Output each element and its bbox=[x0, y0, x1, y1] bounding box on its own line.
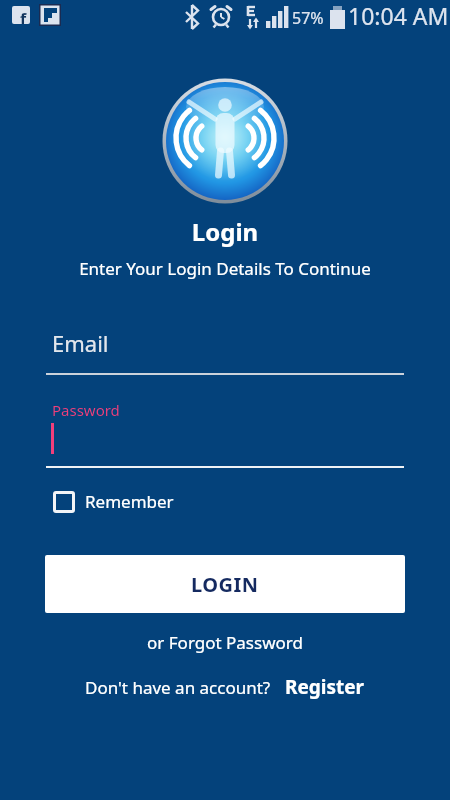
staticText: Password bbox=[52, 400, 120, 420]
staticText: 10:04 AM bbox=[348, 0, 449, 31]
staticText: f bbox=[20, 8, 27, 24]
button[interactable]: Email bbox=[46, 325, 404, 375]
staticText: Don't have an account? bbox=[85, 676, 271, 699]
staticText: Remember bbox=[85, 490, 174, 513]
button[interactable]: LOGIN bbox=[45, 555, 405, 613]
staticText: Email bbox=[52, 328, 109, 358]
staticText: Login bbox=[0, 215, 450, 248]
staticText: LOGIN bbox=[191, 571, 259, 598]
button[interactable]: Remember bbox=[53, 490, 174, 513]
button[interactable]: or Forgot Password bbox=[0, 631, 450, 654]
staticText: Enter Your Login Details To Continue bbox=[0, 257, 450, 280]
staticText: 57% bbox=[292, 7, 324, 29]
button[interactable]: Password bbox=[46, 400, 404, 468]
button[interactable]: Register bbox=[285, 674, 365, 700]
